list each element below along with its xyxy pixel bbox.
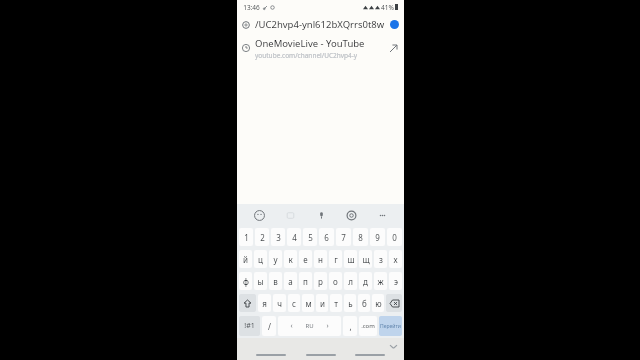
button[interactable]: / [262,316,276,336]
staticText: н [318,254,323,265]
staticText: 7 [341,232,346,243]
staticText: 9 [375,232,380,243]
button[interactable]: Emoji [250,206,268,224]
button[interactable]: м [302,294,314,312]
staticText: youtube.com/channel/UC2hvp4-y [255,51,358,60]
button[interactable]: и [316,294,328,312]
button[interactable]: ы [254,272,267,290]
staticText: м [305,298,312,309]
button[interactable]: з [374,250,387,268]
button[interactable]: 6 [319,228,334,246]
staticText: ч [277,298,282,309]
button[interactable]: к [284,250,297,268]
button[interactable]: д [359,272,372,290]
staticText: 0 [392,232,397,243]
staticText: / [268,321,271,332]
staticText: я [262,298,267,309]
staticText: в [273,276,278,287]
button[interactable]: Перейти [379,316,402,336]
staticText: 4 [292,232,297,243]
button[interactable]: Backspace [386,294,402,312]
button[interactable]: 8 [353,228,368,246]
staticText: RU [305,322,314,330]
button[interactable]: 5 [303,228,317,246]
button[interactable]: Page info [237,14,404,35]
button[interactable]: 1 [239,228,253,246]
staticText: а [288,276,293,287]
staticText: /UC2hvp4-ynl612bXQrrs0t8w [255,18,387,31]
button[interactable]: Navigation [256,354,286,356]
staticText: ы [257,276,264,287]
staticText: к [288,254,293,265]
staticText: р [318,276,323,287]
button[interactable]: у [269,250,282,268]
button[interactable]: OneMovieLive - YouTube [237,35,404,61]
staticText: о [333,276,338,287]
staticText: 8 [358,232,363,243]
button[interactable]: !#1 [239,316,260,336]
button[interactable]: .com [359,316,377,336]
button[interactable]: б [358,294,370,312]
staticText: ‹ [290,321,293,331]
staticText: и [320,298,325,309]
button[interactable]: Space [278,316,341,336]
button[interactable]: е [299,250,312,268]
button[interactable]: 4 [287,228,301,246]
button[interactable]: Shift [239,294,256,312]
staticText: х [393,254,398,265]
staticText: у [273,254,278,265]
button[interactable]: Insert suggestion [387,42,399,54]
staticText: , [349,321,352,332]
button[interactable]: й [239,250,252,268]
button[interactable]: 2 [255,228,269,246]
button[interactable]: ж [374,272,387,290]
staticText: OneMovieLive - YouTube [255,37,365,50]
staticText: э [394,276,398,287]
button[interactable]: Settings [342,206,360,224]
button[interactable]: ф [239,272,252,290]
button[interactable]: р [314,272,327,290]
button[interactable]: Stickers [281,206,299,224]
button[interactable]: п [299,272,312,290]
button[interactable]: л [344,272,357,290]
button[interactable]: 3 [271,228,285,246]
button[interactable]: э [389,272,402,290]
staticText: Перейти [380,323,401,330]
button[interactable]: More options [373,206,391,224]
staticText: ь [348,298,353,309]
staticText: д [363,276,368,287]
button[interactable]: в [269,272,282,290]
button[interactable]: х [389,250,402,268]
button[interactable]: щ [359,250,372,268]
staticText: ц [258,254,263,265]
staticText: с [292,298,296,309]
button[interactable]: ц [254,250,267,268]
button[interactable]: с [288,294,300,312]
button[interactable]: ь [344,294,356,312]
staticText: ф [243,276,249,287]
button[interactable]: т [330,294,342,312]
button[interactable]: Navigation [355,354,385,356]
staticText: 2 [260,232,265,243]
button[interactable]: Voice input [312,206,330,224]
button[interactable]: о [329,272,342,290]
button[interactable]: а [284,272,297,290]
button[interactable]: , [343,316,357,336]
button[interactable]: 7 [336,228,351,246]
button[interactable]: ш [344,250,357,268]
button[interactable]: 0 [387,228,402,246]
button[interactable]: 9 [370,228,385,246]
button[interactable]: я [258,294,271,312]
staticText: й [243,254,248,265]
staticText: 6 [324,232,329,243]
button[interactable]: ю [372,294,384,312]
staticText: б [362,298,367,309]
staticText: › [326,321,329,331]
button[interactable]: н [314,250,327,268]
staticText: л [348,276,353,287]
button[interactable]: Navigation [306,354,336,356]
button[interactable]: г [329,250,342,268]
button[interactable]: Hide keyboard [388,341,398,351]
button[interactable]: ч [273,294,286,312]
button[interactable]: Go [390,20,399,29]
